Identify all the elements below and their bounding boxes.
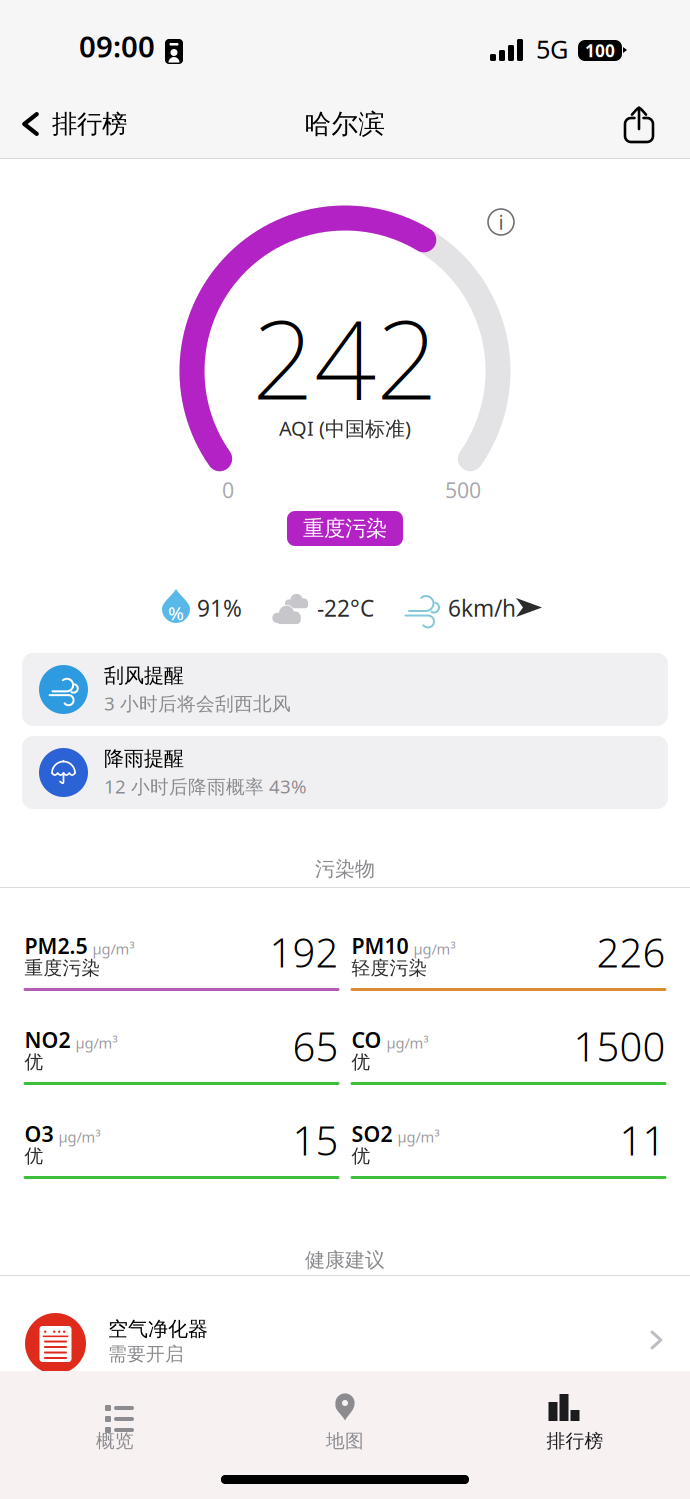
staticText: 5G <box>536 32 568 66</box>
staticText: 轻度污染 <box>351 956 427 979</box>
staticText: 污染物 <box>315 857 375 881</box>
staticText: 242 <box>252 284 438 430</box>
button[interactable]: Information <box>486 207 516 237</box>
staticText: PM10 <box>351 932 408 960</box>
staticText: 65 <box>292 1019 338 1072</box>
staticText: 优 <box>24 1050 43 1073</box>
staticText: 192 <box>269 925 338 978</box>
staticText: 6km/h <box>448 593 516 623</box>
staticText: 需要开启 <box>108 1342 184 1365</box>
staticText: 刮风提醒 <box>104 663 184 688</box>
button[interactable]: 刮风提醒 <box>22 653 668 726</box>
staticText: 100 <box>585 39 615 62</box>
staticText: 15 <box>292 1113 338 1166</box>
button[interactable]: 重度污染 <box>287 511 403 546</box>
staticText: AQI (中国标准) <box>279 415 411 441</box>
staticText: 重度污染 <box>24 956 100 979</box>
staticText: 概览 <box>96 1429 134 1452</box>
button[interactable]: 排行榜 <box>460 1383 690 1459</box>
staticText: 优 <box>351 1144 370 1167</box>
staticText: µg/m³ <box>397 1127 439 1146</box>
staticText: O3 <box>24 1120 53 1148</box>
staticText: i <box>498 209 503 235</box>
staticText: 优 <box>351 1050 370 1073</box>
staticText: 1500 <box>573 1019 665 1072</box>
staticText: 11 <box>619 1113 665 1166</box>
staticText: % <box>168 601 184 625</box>
staticText: µg/m³ <box>386 1033 428 1052</box>
staticText: -22°C <box>317 593 374 623</box>
staticText: 空气净化器 <box>108 1317 208 1341</box>
staticText: 91% <box>197 593 242 623</box>
staticText: 排行榜 <box>546 1429 603 1452</box>
staticText: 09:00 <box>79 26 155 65</box>
staticText: 降雨提醒 <box>104 746 184 771</box>
staticText: 优 <box>24 1144 43 1167</box>
staticText: 地图 <box>326 1429 364 1452</box>
staticText: SO2 <box>351 1120 392 1148</box>
button[interactable]: 空气净化器 <box>0 1301 690 1391</box>
staticText: PM2.5 <box>24 932 87 960</box>
button[interactable]: 排行榜 <box>0 100 127 147</box>
staticText: 0 <box>222 476 234 504</box>
staticText: NO2 <box>24 1026 70 1054</box>
staticText: µg/m³ <box>413 939 455 958</box>
staticText: 3 小时后将会刮西北风 <box>104 691 291 716</box>
staticText: 226 <box>596 925 665 978</box>
staticText: µg/m³ <box>75 1033 117 1052</box>
staticText: 12 小时后降雨概率 43% <box>104 774 307 799</box>
staticText: 健康建议 <box>305 1248 385 1272</box>
staticText: 重度污染 <box>303 515 387 542</box>
button[interactable]: Share <box>624 102 690 146</box>
staticText: 500 <box>445 476 481 504</box>
button[interactable]: 地图 <box>230 1383 460 1459</box>
staticText: µg/m³ <box>92 939 134 958</box>
staticText: 排行榜 <box>52 108 127 139</box>
staticText: 哈尔滨 <box>304 108 385 140</box>
button[interactable]: 降雨提醒 <box>22 736 668 809</box>
staticText: CO <box>351 1026 381 1054</box>
button[interactable]: 概览 <box>0 1383 230 1459</box>
staticText: µg/m³ <box>58 1127 100 1146</box>
